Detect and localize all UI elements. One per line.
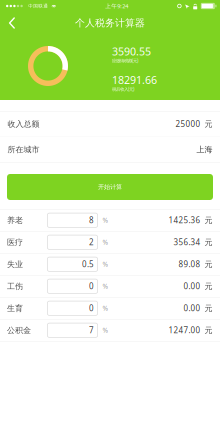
staticText: 3590.55 (112, 44, 151, 58)
staticText: 个人税务计算器 (75, 17, 145, 29)
staticText: 中国联通 (28, 3, 48, 9)
staticText: 0.00 (183, 303, 200, 314)
button[interactable]: Back (0, 12, 26, 34)
staticText: 2 (89, 237, 94, 248)
staticText: 18291.66 (112, 72, 157, 87)
staticText: 1425.36 (168, 215, 200, 226)
staticText: 元 (204, 259, 212, 269)
staticText: 公积金 (7, 325, 31, 335)
staticText: 356.34 (173, 237, 200, 248)
staticText: 0 (89, 303, 94, 314)
staticText: 89.08 (178, 259, 200, 270)
staticText: 25000 (175, 119, 200, 129)
staticText: 应缴纳税额(元) (112, 57, 138, 63)
staticText: 生育 (7, 303, 23, 313)
button[interactable]: 7 (47, 323, 98, 338)
staticText: 0 (89, 281, 94, 292)
staticText: % (102, 304, 108, 313)
staticText: 元 (204, 237, 212, 247)
staticText: 上海 (196, 144, 212, 155)
staticText: 元 (204, 281, 212, 291)
staticText: % (102, 216, 108, 225)
button[interactable]: 0.5 (47, 257, 98, 272)
staticText: 税后收入(元) (112, 86, 134, 92)
staticText: 7 (89, 325, 94, 336)
staticText: 元 (204, 119, 212, 129)
staticText: % (102, 238, 108, 247)
staticText: 8 (89, 215, 94, 226)
staticText: % (102, 326, 108, 335)
button[interactable]: 8 (47, 213, 98, 228)
button[interactable]: 收入总额 (0, 112, 220, 136)
staticText: 0.5 (82, 259, 94, 270)
staticText: 上午9:24 (105, 2, 128, 10)
staticText: 元 (204, 303, 212, 313)
button[interactable]: 所在城市 (0, 136, 220, 162)
staticText: % (102, 260, 108, 269)
staticText: 工伤 (7, 281, 23, 291)
staticText: 医疗 (7, 237, 23, 247)
button[interactable]: 0 (47, 301, 98, 316)
staticText: 1247.00 (168, 325, 200, 336)
staticText: 失业 (7, 259, 23, 269)
staticText: 元 (204, 215, 212, 225)
button[interactable]: 开始计算 (7, 174, 213, 200)
button[interactable]: 0 (47, 279, 98, 294)
staticText: 元 (204, 325, 212, 335)
staticText: 养老 (7, 215, 23, 225)
staticText: 收入总额 (7, 119, 39, 129)
staticText: % (102, 282, 108, 291)
staticText: 0.00 (183, 281, 200, 292)
staticText: 开始计算 (98, 183, 122, 191)
staticText: 所在城市 (7, 144, 39, 155)
button[interactable]: 2 (47, 235, 98, 250)
